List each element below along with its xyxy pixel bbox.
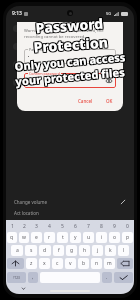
staticText: Only you can access (13, 50, 126, 75)
button[interactable]: i (96, 232, 107, 243)
button[interactable]: l (118, 245, 129, 256)
staticText: 3 (35, 223, 38, 230)
button[interactable]: k (105, 245, 116, 256)
button[interactable]: Shift (7, 258, 24, 269)
button[interactable]: Show password (24, 49, 116, 64)
button[interactable]: y (70, 232, 81, 243)
staticText: Change volume (14, 199, 48, 205)
button[interactable]: 3 (31, 222, 42, 230)
staticText: Password Protection (0, 11, 140, 59)
button[interactable]: e (31, 232, 42, 243)
button[interactable]: ?123 (7, 272, 26, 283)
button[interactable]: q (7, 232, 17, 243)
staticText: d (43, 247, 47, 254)
staticText: m (107, 260, 112, 267)
staticText: f (58, 247, 60, 254)
button[interactable]: 1 (7, 222, 17, 230)
button[interactable]: v (65, 258, 76, 269)
button[interactable]: 7 (83, 222, 94, 230)
staticText: Password Protection (0, 10, 140, 58)
staticText: r (48, 234, 51, 241)
button[interactable]: Cancel (75, 96, 96, 106)
staticText: your protected files (15, 65, 125, 90)
staticText: q (10, 234, 14, 241)
button[interactable]: Act location (14, 210, 126, 216)
staticText: u (87, 234, 91, 241)
button[interactable]: 5 (57, 222, 68, 230)
staticText: 5 (61, 223, 64, 230)
button[interactable]: a (11, 245, 23, 256)
staticText: Only you can access (15, 49, 127, 74)
button[interactable]: c (52, 258, 63, 269)
staticText: a (16, 247, 19, 254)
staticText: 9 (113, 223, 116, 230)
button[interactable]: h (79, 245, 90, 256)
button[interactable]: Change volume (14, 199, 126, 205)
staticText: 9:13 (12, 10, 22, 17)
staticText: Password (29, 47, 46, 52)
staticText: 2 (23, 223, 26, 230)
button[interactable]: u (83, 232, 94, 243)
staticText: Only you can access (14, 48, 127, 73)
staticText: your protected files (16, 64, 126, 89)
other: Show password (106, 54, 112, 60)
staticText: 4 (48, 223, 51, 230)
staticText: your protected files (15, 64, 125, 89)
staticText: 0 (126, 223, 129, 230)
button[interactable]: . (102, 272, 112, 283)
button[interactable]: 2 (19, 222, 29, 230)
button[interactable]: m (104, 258, 115, 269)
staticText: Password Protection (0, 11, 140, 59)
staticText: 8 (100, 223, 103, 230)
staticText: g (70, 247, 74, 254)
button[interactable]: g (66, 245, 77, 256)
staticText: j (97, 247, 99, 254)
button[interactable]: Show password (24, 73, 116, 88)
staticText: Password Protection (0, 11, 140, 59)
button[interactable]: 4 (44, 222, 55, 230)
staticText: 7 (87, 223, 90, 230)
button[interactable]: 6 (70, 222, 81, 230)
button[interactable]: 8 (96, 222, 107, 230)
staticText: s (30, 247, 33, 254)
button[interactable]: n (91, 258, 102, 269)
button[interactable]: w (19, 232, 29, 243)
staticText: your protected files (15, 63, 126, 88)
button[interactable]: d (39, 245, 51, 256)
button[interactable]: , (28, 272, 38, 283)
button[interactable]: Backspace (117, 258, 133, 269)
staticText: Act location (14, 210, 39, 216)
staticText: Only you can access (14, 49, 126, 74)
other: Show password (106, 78, 112, 84)
staticText: c (56, 260, 59, 267)
staticText: Confirm password (29, 71, 60, 76)
staticText: k (109, 247, 112, 254)
button[interactable]: OK (103, 96, 116, 106)
staticText: your protected files (16, 65, 126, 90)
button[interactable]: t (57, 232, 68, 243)
staticText: your protected files (13, 63, 124, 88)
button[interactable]: r (44, 232, 55, 243)
staticText: l (123, 247, 125, 254)
staticText: 1 (11, 223, 14, 230)
staticText: p (126, 234, 130, 241)
button[interactable]: p (122, 232, 133, 243)
button[interactable]: 9 (109, 222, 120, 230)
button[interactable]: j (92, 245, 103, 256)
button[interactable]: s (25, 245, 37, 256)
button[interactable]: o (109, 232, 120, 243)
staticText: w (22, 234, 26, 241)
button[interactable]: z (26, 258, 37, 269)
staticText: b (82, 260, 86, 267)
button[interactable]: 0 (122, 222, 133, 230)
button[interactable]: Enter (114, 272, 133, 283)
staticText: Cancel (78, 98, 93, 104)
staticText: Password Protection (0, 12, 140, 60)
button[interactable]: b (78, 258, 89, 269)
staticText: ?123 (13, 276, 20, 280)
staticText: 6 (74, 223, 77, 230)
button[interactable]: f (53, 245, 64, 256)
staticText: OK (106, 98, 113, 104)
button[interactable]: x (39, 258, 50, 269)
